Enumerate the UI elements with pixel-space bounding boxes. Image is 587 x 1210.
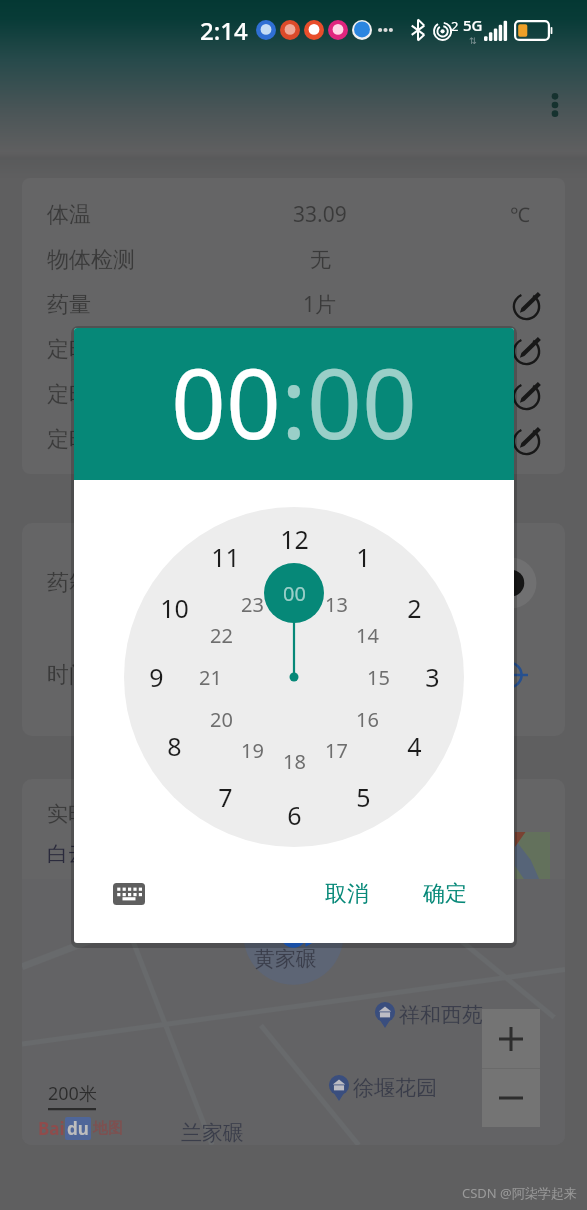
staticText: 10 <box>160 591 189 625</box>
staticText: 13 <box>325 591 348 618</box>
staticText: du <box>67 1117 89 1140</box>
staticText: 00 <box>307 336 417 467</box>
staticText: 白云区xx街道 <box>47 839 175 868</box>
staticText: 18 <box>283 748 306 775</box>
button[interactable]: 药量 <box>22 282 565 327</box>
staticText: 00 <box>283 580 306 607</box>
button[interactable]: 时间 <box>22 651 565 699</box>
staticText: 12 <box>280 522 309 556</box>
staticText: 1片 <box>303 290 337 319</box>
staticText: 22 <box>210 622 233 649</box>
staticText: ℃ <box>510 201 530 228</box>
button[interactable]: 00 <box>307 336 417 467</box>
staticText: 11 <box>211 540 240 574</box>
staticText: 物体检测 <box>47 246 135 274</box>
staticText: 定时三 <box>47 426 113 454</box>
button[interactable]: 定时三 <box>22 417 565 462</box>
staticText: 3 <box>425 660 440 694</box>
staticText: 00 <box>171 336 281 467</box>
staticText: 9 <box>149 660 164 694</box>
staticText: 定时一 <box>47 336 113 364</box>
button[interactable]: Switch to text input <box>105 870 153 918</box>
staticText: 7 <box>218 780 233 814</box>
staticText: 无 <box>310 247 331 273</box>
staticText: 兰家碾 <box>181 1120 244 1145</box>
staticText: 地图 <box>93 1119 123 1138</box>
button[interactable]: 取消 <box>311 870 383 918</box>
staticText: 5G <box>463 15 483 35</box>
staticText: 徐堰花园 <box>353 1075 437 1101</box>
staticText: 1 <box>356 540 371 574</box>
staticText: 定时二 <box>47 381 113 409</box>
staticText: 33.09 <box>293 200 347 229</box>
staticText: 药量 <box>47 291 91 319</box>
staticText: 17 <box>325 737 348 764</box>
button[interactable]: 定时一 <box>22 327 565 372</box>
staticText: 祥和西苑 <box>399 1002 483 1028</box>
staticText: 6 <box>287 798 302 832</box>
staticText: 200米 <box>48 1081 97 1106</box>
staticText: 黄家碾 <box>254 946 317 972</box>
button[interactable]: 药箱 <box>22 559 565 607</box>
staticText: 16 <box>356 706 379 733</box>
staticText: 8 <box>167 729 182 763</box>
staticText: 时间 <box>47 661 91 689</box>
button[interactable]: 00 <box>171 336 281 467</box>
button[interactable]: 确定 <box>409 870 481 918</box>
staticText: 实时定位 <box>47 801 131 827</box>
button[interactable]: Zoom out <box>482 1069 540 1127</box>
staticText: CSDN @阿柒学起来 <box>462 1184 577 1202</box>
staticText: 2 <box>451 17 459 35</box>
staticText: 20 <box>210 706 233 733</box>
staticText: : <box>281 336 307 467</box>
staticText: ⇅ <box>469 36 477 46</box>
staticText: 确定 <box>423 880 467 908</box>
button[interactable]: Zoom in <box>482 1009 540 1068</box>
staticText: 15 <box>367 664 390 691</box>
staticText: 4 <box>407 729 422 763</box>
staticText: 23 <box>241 591 264 618</box>
staticText: 5 <box>356 780 371 814</box>
staticText: 2:14 <box>200 14 248 47</box>
staticText: Bai <box>38 1117 65 1140</box>
button[interactable]: 定时二 <box>22 372 565 417</box>
staticText: 取消 <box>325 880 369 908</box>
button[interactable]: 体温 <box>22 192 565 237</box>
staticText: 19 <box>241 737 264 764</box>
staticText: 药箱 <box>47 569 91 597</box>
button[interactable]: More options <box>532 82 578 128</box>
staticText: 体温 <box>47 201 91 229</box>
staticText: 2 <box>407 591 422 625</box>
staticText: 21 <box>199 664 222 691</box>
staticText: 14 <box>356 622 379 649</box>
button[interactable]: 物体检测 <box>22 237 565 282</box>
